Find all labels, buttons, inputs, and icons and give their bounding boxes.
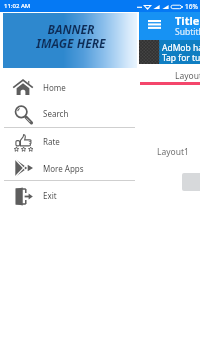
button[interactable]: Home — [0, 73, 139, 101]
button[interactable]: Open navigation drawer — [142, 14, 167, 35]
staticText: Title — [175, 13, 200, 28]
button[interactable]: Exit — [0, 182, 139, 209]
staticText: BANNER IMAGE HERE — [36, 21, 106, 52]
staticText: Subtitle — [175, 26, 200, 38]
staticText: 11:02 AM — [4, 2, 31, 10]
staticText: Tap for tuto — [162, 52, 200, 64]
button[interactable]: Search — [0, 100, 139, 127]
staticText: Home — [43, 82, 66, 93]
button[interactable]: Rate — [0, 128, 139, 155]
button[interactable]: Layout — [175, 70, 200, 82]
staticText: 16% — [185, 2, 198, 11]
staticText: Exit — [43, 190, 57, 201]
button[interactable]: More Apps — [0, 155, 139, 181]
staticText: AdMob has — [162, 42, 200, 54]
staticText: Layout1 — [157, 146, 189, 158]
staticText: Rate — [43, 136, 60, 147]
staticText: Search — [43, 108, 69, 119]
staticText: More Apps — [43, 163, 84, 174]
